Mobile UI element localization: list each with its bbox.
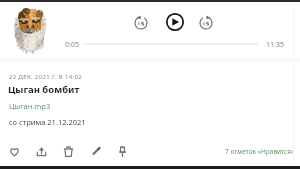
button[interactable]: Edit — [88, 144, 102, 158]
staticText: 0:05 — [65, 40, 79, 50]
button[interactable]: Pin — [115, 144, 129, 158]
staticText: со стрима 21.12.2021 — [9, 117, 86, 127]
button[interactable]: Delete — [61, 144, 75, 158]
button[interactable]: Forward 15 seconds — [196, 12, 216, 32]
button[interactable]: Share — [34, 144, 48, 158]
button[interactable]: Rewind 15 seconds — [131, 12, 151, 32]
button[interactable]: 7 отметок «Нравится» — [225, 147, 295, 156]
staticText: 22 ДЕК. 2021 Г. В 14:02 — [9, 73, 83, 81]
button[interactable]: Play — [165, 12, 185, 32]
staticText: Цыган бомбит — [8, 83, 80, 96]
staticText: 11:35 — [266, 40, 284, 50]
button[interactable]: Цыган.mp3 — [9, 101, 51, 111]
button[interactable]: Like — [7, 144, 21, 158]
